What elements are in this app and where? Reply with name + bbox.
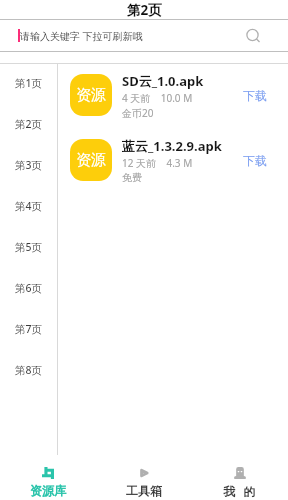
staticText: 请输入关键字 下拉可刷新哦 — [20, 29, 143, 43]
button[interactable]: 第7页 — [0, 308, 57, 349]
button[interactable]: 第1页 — [0, 62, 57, 103]
staticText: 第8页 — [15, 363, 42, 377]
staticText: 第5页 — [15, 240, 42, 254]
staticText: 金币20 — [122, 106, 154, 120]
staticText: 蓝云_1.3.2.9.apk — [122, 137, 222, 155]
staticText: 第1页 — [15, 76, 42, 90]
button[interactable]: 我 的 — [192, 455, 288, 500]
button[interactable]: Search — [244, 26, 264, 46]
button[interactable]: 第6页 — [0, 267, 57, 308]
button[interactable]: 下载 — [236, 151, 288, 170]
staticText: SD云_1.0.apk — [122, 72, 204, 90]
button[interactable]: 第2页 — [0, 103, 57, 144]
staticText: 第4页 — [15, 199, 42, 213]
staticText: 资源库 — [30, 483, 66, 498]
staticText: 4 天前 10.0 M — [122, 91, 193, 105]
staticText: 第3页 — [15, 158, 42, 172]
button[interactable]: 第5页 — [0, 226, 57, 267]
button[interactable]: 第3页 — [0, 144, 57, 185]
button[interactable]: 资源库 — [0, 455, 96, 500]
staticText: 资源 — [76, 86, 106, 105]
button[interactable]: 下载 — [236, 86, 288, 105]
button[interactable]: 第8页 — [0, 349, 57, 390]
staticText: 12 天前 4.3 M — [122, 156, 193, 170]
button[interactable]: 资源 — [58, 129, 288, 194]
button[interactable]: 工具箱 — [96, 455, 192, 500]
staticText: 免费 — [122, 171, 142, 184]
staticText: 第7页 — [15, 322, 42, 336]
staticText: 我 的 — [223, 483, 258, 499]
staticText: 第6页 — [15, 281, 42, 295]
button[interactable]: 资源 — [58, 64, 288, 129]
staticText: 下载 — [243, 153, 267, 168]
staticText: 第2页 — [15, 117, 42, 131]
staticText: 第2页 — [127, 1, 162, 19]
staticText: 下载 — [243, 88, 267, 103]
button[interactable]: 第4页 — [0, 185, 57, 226]
staticText: 工具箱 — [126, 483, 162, 498]
staticText: 资源 — [76, 151, 106, 170]
